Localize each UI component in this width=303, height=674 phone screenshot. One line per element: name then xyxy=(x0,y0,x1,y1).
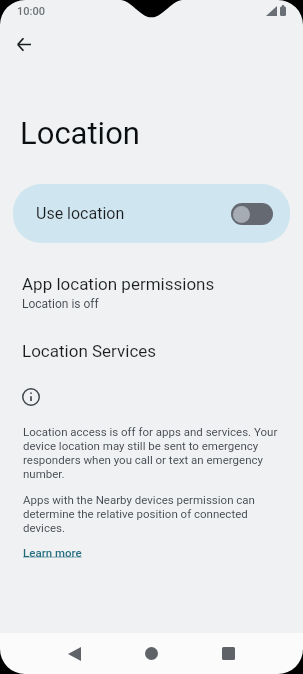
staticText: Location Services xyxy=(22,341,157,361)
button[interactable]: Home xyxy=(135,637,168,670)
button[interactable]: Use location toggle xyxy=(231,203,273,225)
staticText: Apps with the Nearby devices permission … xyxy=(23,493,280,535)
button[interactable]: Recent apps xyxy=(212,637,245,670)
staticText: Use location xyxy=(36,204,125,223)
staticText: Location access is off for apps and serv… xyxy=(23,425,280,481)
button[interactable]: Use location xyxy=(13,184,290,243)
button[interactable]: Back xyxy=(58,637,91,670)
staticText: Location xyxy=(20,115,140,151)
button[interactable]: App location permissions xyxy=(0,270,303,315)
button[interactable]: Back xyxy=(4,24,44,64)
staticText: App location permissions xyxy=(22,274,215,294)
button[interactable]: Learn more xyxy=(23,546,82,559)
staticText: 10:00 xyxy=(17,5,45,18)
staticText: Location is off xyxy=(22,297,99,311)
